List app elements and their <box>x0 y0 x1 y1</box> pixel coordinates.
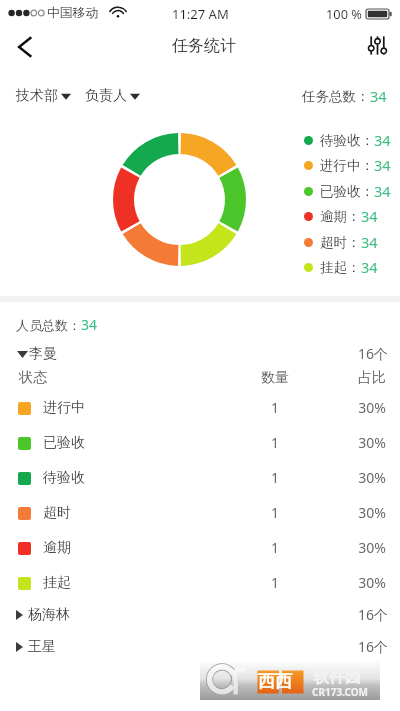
staticText: 进行中： <box>320 157 374 174</box>
staticText: 11:27 AM <box>172 5 229 23</box>
staticText: 16个 <box>358 344 389 363</box>
staticText: 34 <box>361 257 378 277</box>
staticText: 中国移动 <box>47 5 99 21</box>
staticText: 30% <box>332 538 400 557</box>
button[interactable]: 负责人 <box>85 87 140 105</box>
staticText: 超时： <box>320 234 361 251</box>
staticText: 超时 <box>43 504 71 522</box>
staticText: 挂起 <box>43 574 71 592</box>
staticText: 30% <box>332 433 400 452</box>
staticText: 30% <box>332 468 400 487</box>
button[interactable]: 待验收 <box>0 460 400 495</box>
staticText: 挂起： <box>320 259 361 276</box>
button[interactable]: 待验收： <box>304 130 391 150</box>
staticText: 1 <box>235 398 315 417</box>
button[interactable]: 进行中： <box>304 155 391 175</box>
staticText: 34 <box>374 155 391 175</box>
staticText: 状态 <box>19 369 47 387</box>
button[interactable]: 已验收 <box>0 425 400 460</box>
staticText: 1 <box>235 538 315 557</box>
button[interactable]: Filter settings <box>360 26 394 66</box>
staticText: 王星 <box>28 638 56 656</box>
staticText: 负责人 <box>85 87 127 105</box>
staticText: 已验收 <box>43 434 85 452</box>
staticText: 人员总数： <box>16 317 81 333</box>
staticText: 34 <box>361 232 378 252</box>
button[interactable]: 技术部 <box>16 87 71 105</box>
button[interactable]: Back <box>0 26 46 66</box>
staticText: 数量 <box>235 369 315 387</box>
staticText: 西西 <box>258 671 292 692</box>
button[interactable]: 王星 <box>0 633 400 660</box>
staticText: 16个 <box>358 605 389 624</box>
staticText: 软件园 <box>313 667 361 687</box>
staticText: 30% <box>332 573 400 592</box>
button[interactable]: 逾期 <box>0 530 400 565</box>
button[interactable]: 挂起 <box>0 565 400 600</box>
staticText: 待验收： <box>320 132 374 149</box>
staticText: 逾期： <box>320 208 361 225</box>
button[interactable]: 已验收： <box>304 181 391 201</box>
staticText: 已验收： <box>320 183 374 200</box>
staticText: 1 <box>235 468 315 487</box>
staticText: 34 <box>374 130 391 150</box>
staticText: CR173.COM <box>312 685 369 699</box>
button[interactable]: 超时 <box>0 495 400 530</box>
staticText: 34 <box>374 181 391 201</box>
staticText: 进行中 <box>43 399 85 417</box>
staticText: 34 <box>370 86 387 106</box>
staticText: 逾期 <box>43 539 71 557</box>
staticText: 任务统计 <box>172 36 236 56</box>
staticText: 技术部 <box>16 87 58 105</box>
staticText: 1 <box>235 433 315 452</box>
staticText: 30% <box>332 503 400 522</box>
button[interactable]: 李曼 <box>0 340 400 367</box>
staticText: 34 <box>361 206 378 226</box>
button[interactable]: 挂起： <box>304 257 378 277</box>
button[interactable]: 进行中 <box>0 390 400 425</box>
staticText: 34 <box>81 315 98 334</box>
staticText: 待验收 <box>43 469 85 487</box>
staticText: 30% <box>332 398 400 417</box>
staticText: 16个 <box>358 637 389 656</box>
button[interactable]: 杨海林 <box>0 601 400 628</box>
staticText: 李曼 <box>29 345 57 363</box>
staticText: 任务总数： <box>302 88 370 105</box>
button[interactable]: 逾期： <box>304 206 378 226</box>
staticText: 1 <box>235 573 315 592</box>
button[interactable]: 超时： <box>304 232 378 252</box>
staticText: 杨海林 <box>28 606 70 624</box>
staticText: 1 <box>235 503 315 522</box>
staticText: 100 % <box>326 5 362 22</box>
button[interactable]: 任务总数： <box>302 86 387 106</box>
staticText: 占比 <box>332 369 400 387</box>
